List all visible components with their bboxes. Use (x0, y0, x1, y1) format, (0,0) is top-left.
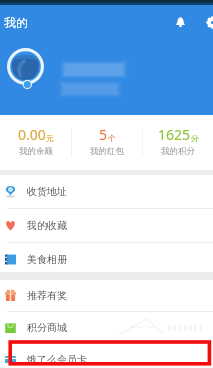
button[interactable]: 积分商城 (0, 312, 213, 343)
staticText: 积分商城 (27, 321, 67, 334)
staticText: 推荐有奖 (27, 289, 67, 302)
button[interactable]: 5 (72, 115, 142, 170)
button[interactable]: Notifications (169, 11, 191, 33)
staticText: 5 (99, 125, 108, 144)
staticText: 个 (108, 133, 116, 143)
button[interactable]: 收货地址 (0, 175, 213, 208)
staticText: 美食相册 (27, 253, 67, 266)
button[interactable]: 饿了么会员卡 (0, 344, 213, 368)
button[interactable]: Settings (201, 11, 213, 33)
staticText: 我的余额 (19, 146, 53, 157)
button[interactable]: 0.00 (0, 115, 71, 170)
button[interactable]: 推荐有奖 (0, 280, 213, 311)
button[interactable]: 1625 (143, 115, 213, 170)
staticText: 我的积分 (161, 146, 195, 157)
staticText: 元 (46, 133, 54, 143)
staticText: 分 (191, 133, 199, 143)
button[interactable]: 我的收藏 (0, 209, 213, 242)
staticText: 收货地址 (27, 185, 67, 198)
staticText: 0.00 (18, 125, 46, 144)
staticText: 饿了么会员卡 (27, 353, 87, 366)
button[interactable] (0, 43, 213, 95)
staticText: 我的收藏 (27, 219, 67, 232)
staticText: 1625 (158, 125, 191, 144)
button[interactable]: 美食相册 (0, 243, 213, 276)
staticText: 我的红包 (90, 146, 124, 157)
staticText: 我的 (4, 15, 28, 30)
